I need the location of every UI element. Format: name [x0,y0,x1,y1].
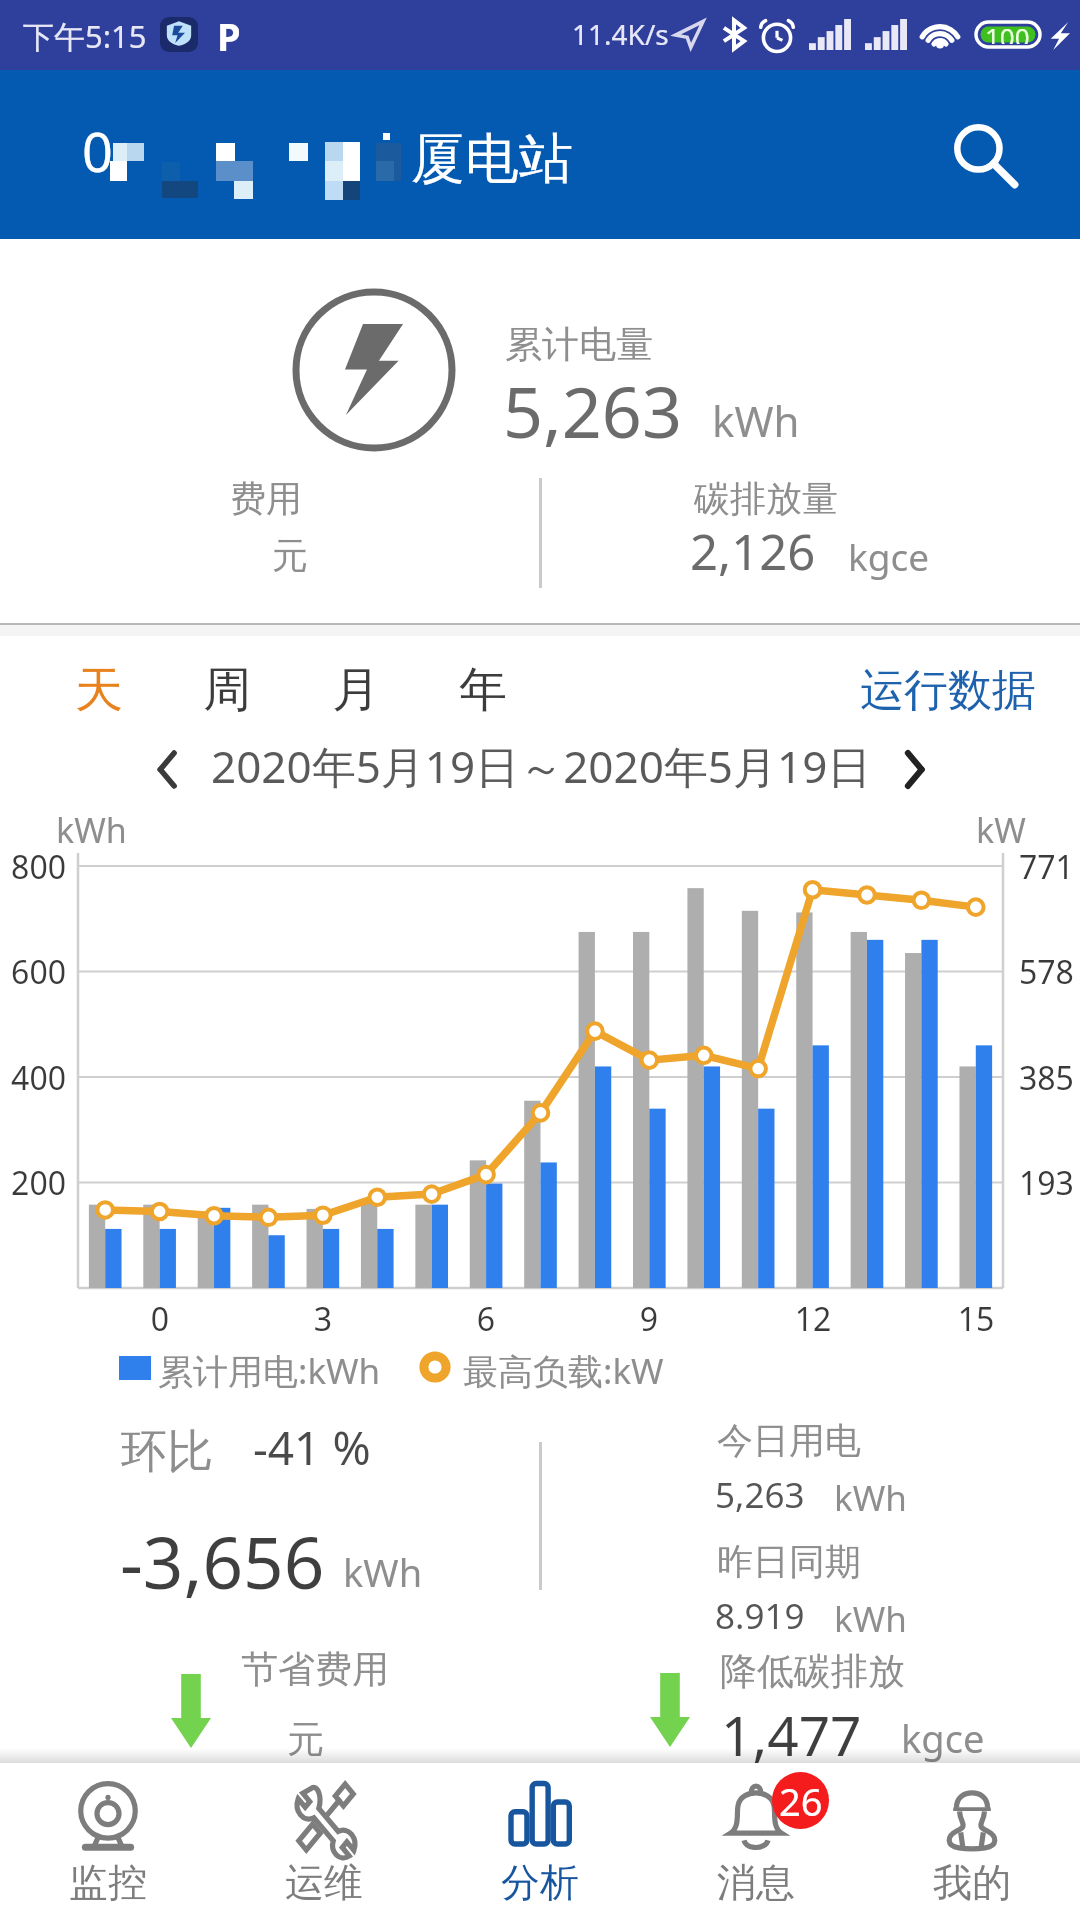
button[interactable]: Search [940,110,1030,200]
staticText: 1,477 [721,1697,862,1772]
staticText: 0 [115,1297,205,1341]
staticText: 193 [1019,1161,1074,1205]
staticText: 年 [459,660,507,720]
staticText: 累计用电:kWh [158,1347,381,1395]
staticText: 771 [1019,845,1074,889]
staticText: 600 [0,950,66,994]
staticText: 月 [332,660,380,720]
staticText: 天 [75,660,123,720]
staticText: 385 [1019,1056,1074,1100]
staticText: 累计电量 [505,321,653,368]
staticText: 400 [0,1056,66,1100]
staticText: 9 [604,1297,694,1341]
staticText: P [217,10,241,62]
staticText: 消息 [717,1858,795,1907]
staticText: -41 % [253,1416,371,1479]
staticText: 最高负载:kW [463,1347,664,1395]
staticText: 环比 [121,1423,213,1481]
staticText: 昨日同期 [717,1539,861,1584]
staticText: 3 [278,1297,368,1341]
staticText: 分析 [501,1858,579,1907]
staticText: 800 [0,845,66,889]
staticText: 节省费用 [241,1646,389,1693]
staticText: kW [976,807,1026,853]
staticText: 2,126 [690,518,816,585]
staticText: 今日用电 [717,1418,861,1463]
staticText: 578 [1019,950,1074,994]
staticText: 周 [203,660,251,720]
button[interactable]: 运行数据 [845,644,1050,736]
staticText: kWh [834,1474,907,1522]
staticText: 下午5:15 [23,15,147,57]
button[interactable]: 周 [175,644,279,736]
staticText: 元 [272,533,308,578]
staticText: 15 [931,1297,1021,1341]
staticText: 监控 [69,1858,147,1907]
staticText: kWh [343,1546,423,1598]
button[interactable]: 分析 [432,1763,648,1920]
staticText: 费用 [230,476,302,521]
staticText: 我的 [933,1858,1011,1907]
staticText: kWh [834,1595,907,1643]
staticText: 厦电站 [411,125,573,193]
staticText: 11.4K/s [572,15,669,53]
staticText: kWh [56,807,127,853]
button[interactable]: 我的 [864,1763,1080,1920]
staticText: kWh [712,392,800,449]
staticText: 运维 [285,1858,363,1907]
button[interactable]: Previous period [136,738,198,800]
staticText: 12 [768,1297,858,1341]
staticText: 100 [985,19,1030,44]
button[interactable]: 月 [304,644,408,736]
button[interactable]: 监控 [0,1763,216,1920]
staticText: -3,656 [120,1513,325,1610]
staticText: 元 [287,1716,324,1763]
staticText: kgce [848,531,930,581]
staticText: kgce [901,1712,985,1764]
button[interactable]: 天 [47,644,151,736]
button[interactable]: Next period [883,738,945,800]
staticText: 5,263 [503,363,682,458]
button[interactable]: 年 [431,644,535,736]
staticText: 碳排放量 [694,476,838,521]
staticText: 26 [779,1775,823,1827]
staticText: 8.919 [715,1592,805,1640]
staticText: 6 [441,1297,531,1341]
staticText: 2020年5月19日～2020年5月19日 [211,736,872,796]
button[interactable]: 运维 [216,1763,432,1920]
staticText: 运行数据 [860,663,1036,718]
button[interactable]: 26 [648,1763,864,1920]
staticText: 200 [0,1161,66,1205]
staticText: 降低碳排放 [720,1648,905,1695]
staticText: 5,263 [715,1471,805,1519]
staticText: 0 [82,114,113,188]
